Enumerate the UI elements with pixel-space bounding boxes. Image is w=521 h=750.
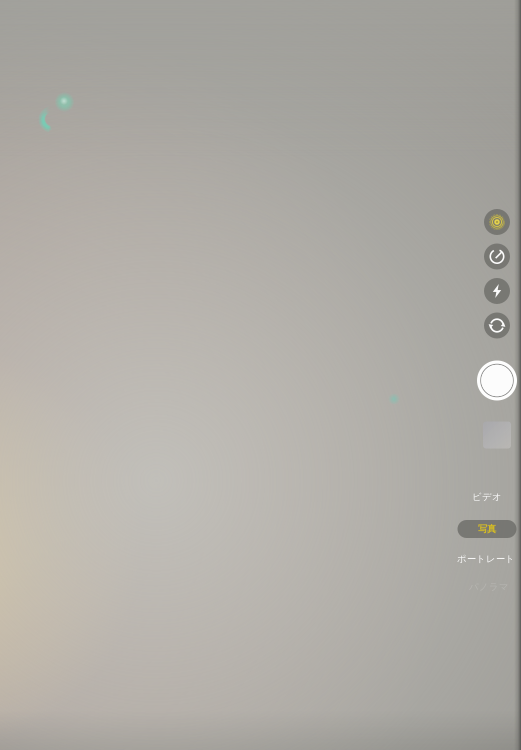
staticText: ビデオ	[472, 491, 502, 503]
button[interactable]: ビデオ	[451, 487, 521, 507]
staticText: パノラマ	[469, 581, 509, 593]
button[interactable]: Timer	[480, 239, 514, 273]
button[interactable]: Flash	[480, 274, 514, 308]
button[interactable]: 写真	[457, 520, 516, 538]
staticText: 写真	[478, 523, 496, 535]
button[interactable]: Live Photo	[480, 205, 514, 239]
button[interactable]: Take Photo	[474, 357, 520, 403]
staticText: ポートレート	[457, 553, 515, 565]
button[interactable]: Switch Camera	[480, 308, 514, 342]
button[interactable]: ポートレート	[448, 549, 521, 569]
button[interactable]: Photo Library	[483, 421, 511, 448]
